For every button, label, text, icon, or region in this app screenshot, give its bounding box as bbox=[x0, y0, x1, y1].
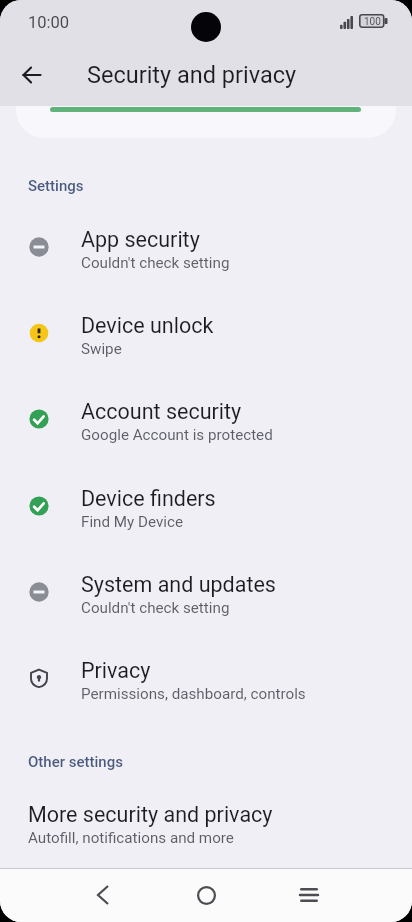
button[interactable]: Recent apps bbox=[285, 871, 333, 919]
staticText: Autofill, notifications and more bbox=[28, 829, 234, 847]
staticText: Couldn't check setting bbox=[81, 254, 230, 272]
button[interactable]: Device unlock bbox=[0, 290, 412, 372]
button[interactable]: App security bbox=[0, 204, 412, 286]
button[interactable]: Home bbox=[182, 871, 230, 919]
button[interactable]: More security and privacy bbox=[0, 778, 412, 842]
staticText: Security and privacy bbox=[87, 61, 297, 89]
staticText: Privacy bbox=[81, 658, 151, 683]
staticText: 100 bbox=[364, 16, 381, 28]
button[interactable]: Back bbox=[79, 871, 127, 919]
staticText: More security and privacy bbox=[28, 802, 273, 827]
staticText: Permissions, dashboard, controls bbox=[81, 685, 306, 703]
button[interactable]: Navigate up bbox=[10, 53, 54, 97]
button[interactable]: Device finders bbox=[0, 463, 412, 545]
staticText: Account security bbox=[81, 399, 242, 424]
staticText: App security bbox=[81, 227, 200, 252]
staticText: Settings bbox=[28, 177, 84, 195]
button[interactable]: Privacy bbox=[0, 635, 412, 717]
staticText: Device finders bbox=[81, 486, 216, 511]
staticText: System and updates bbox=[81, 572, 276, 597]
button[interactable]: Account security bbox=[0, 376, 412, 458]
staticText: Find My Device bbox=[81, 513, 183, 531]
button[interactable]: System and updates bbox=[0, 549, 412, 631]
staticText: Device unlock bbox=[81, 313, 214, 338]
staticText: Google Account is protected bbox=[81, 426, 273, 444]
staticText: Other settings bbox=[28, 753, 123, 771]
staticText: Couldn't check setting bbox=[81, 599, 230, 617]
staticText: 10:00 bbox=[28, 13, 70, 32]
staticText: Swipe bbox=[81, 340, 122, 358]
